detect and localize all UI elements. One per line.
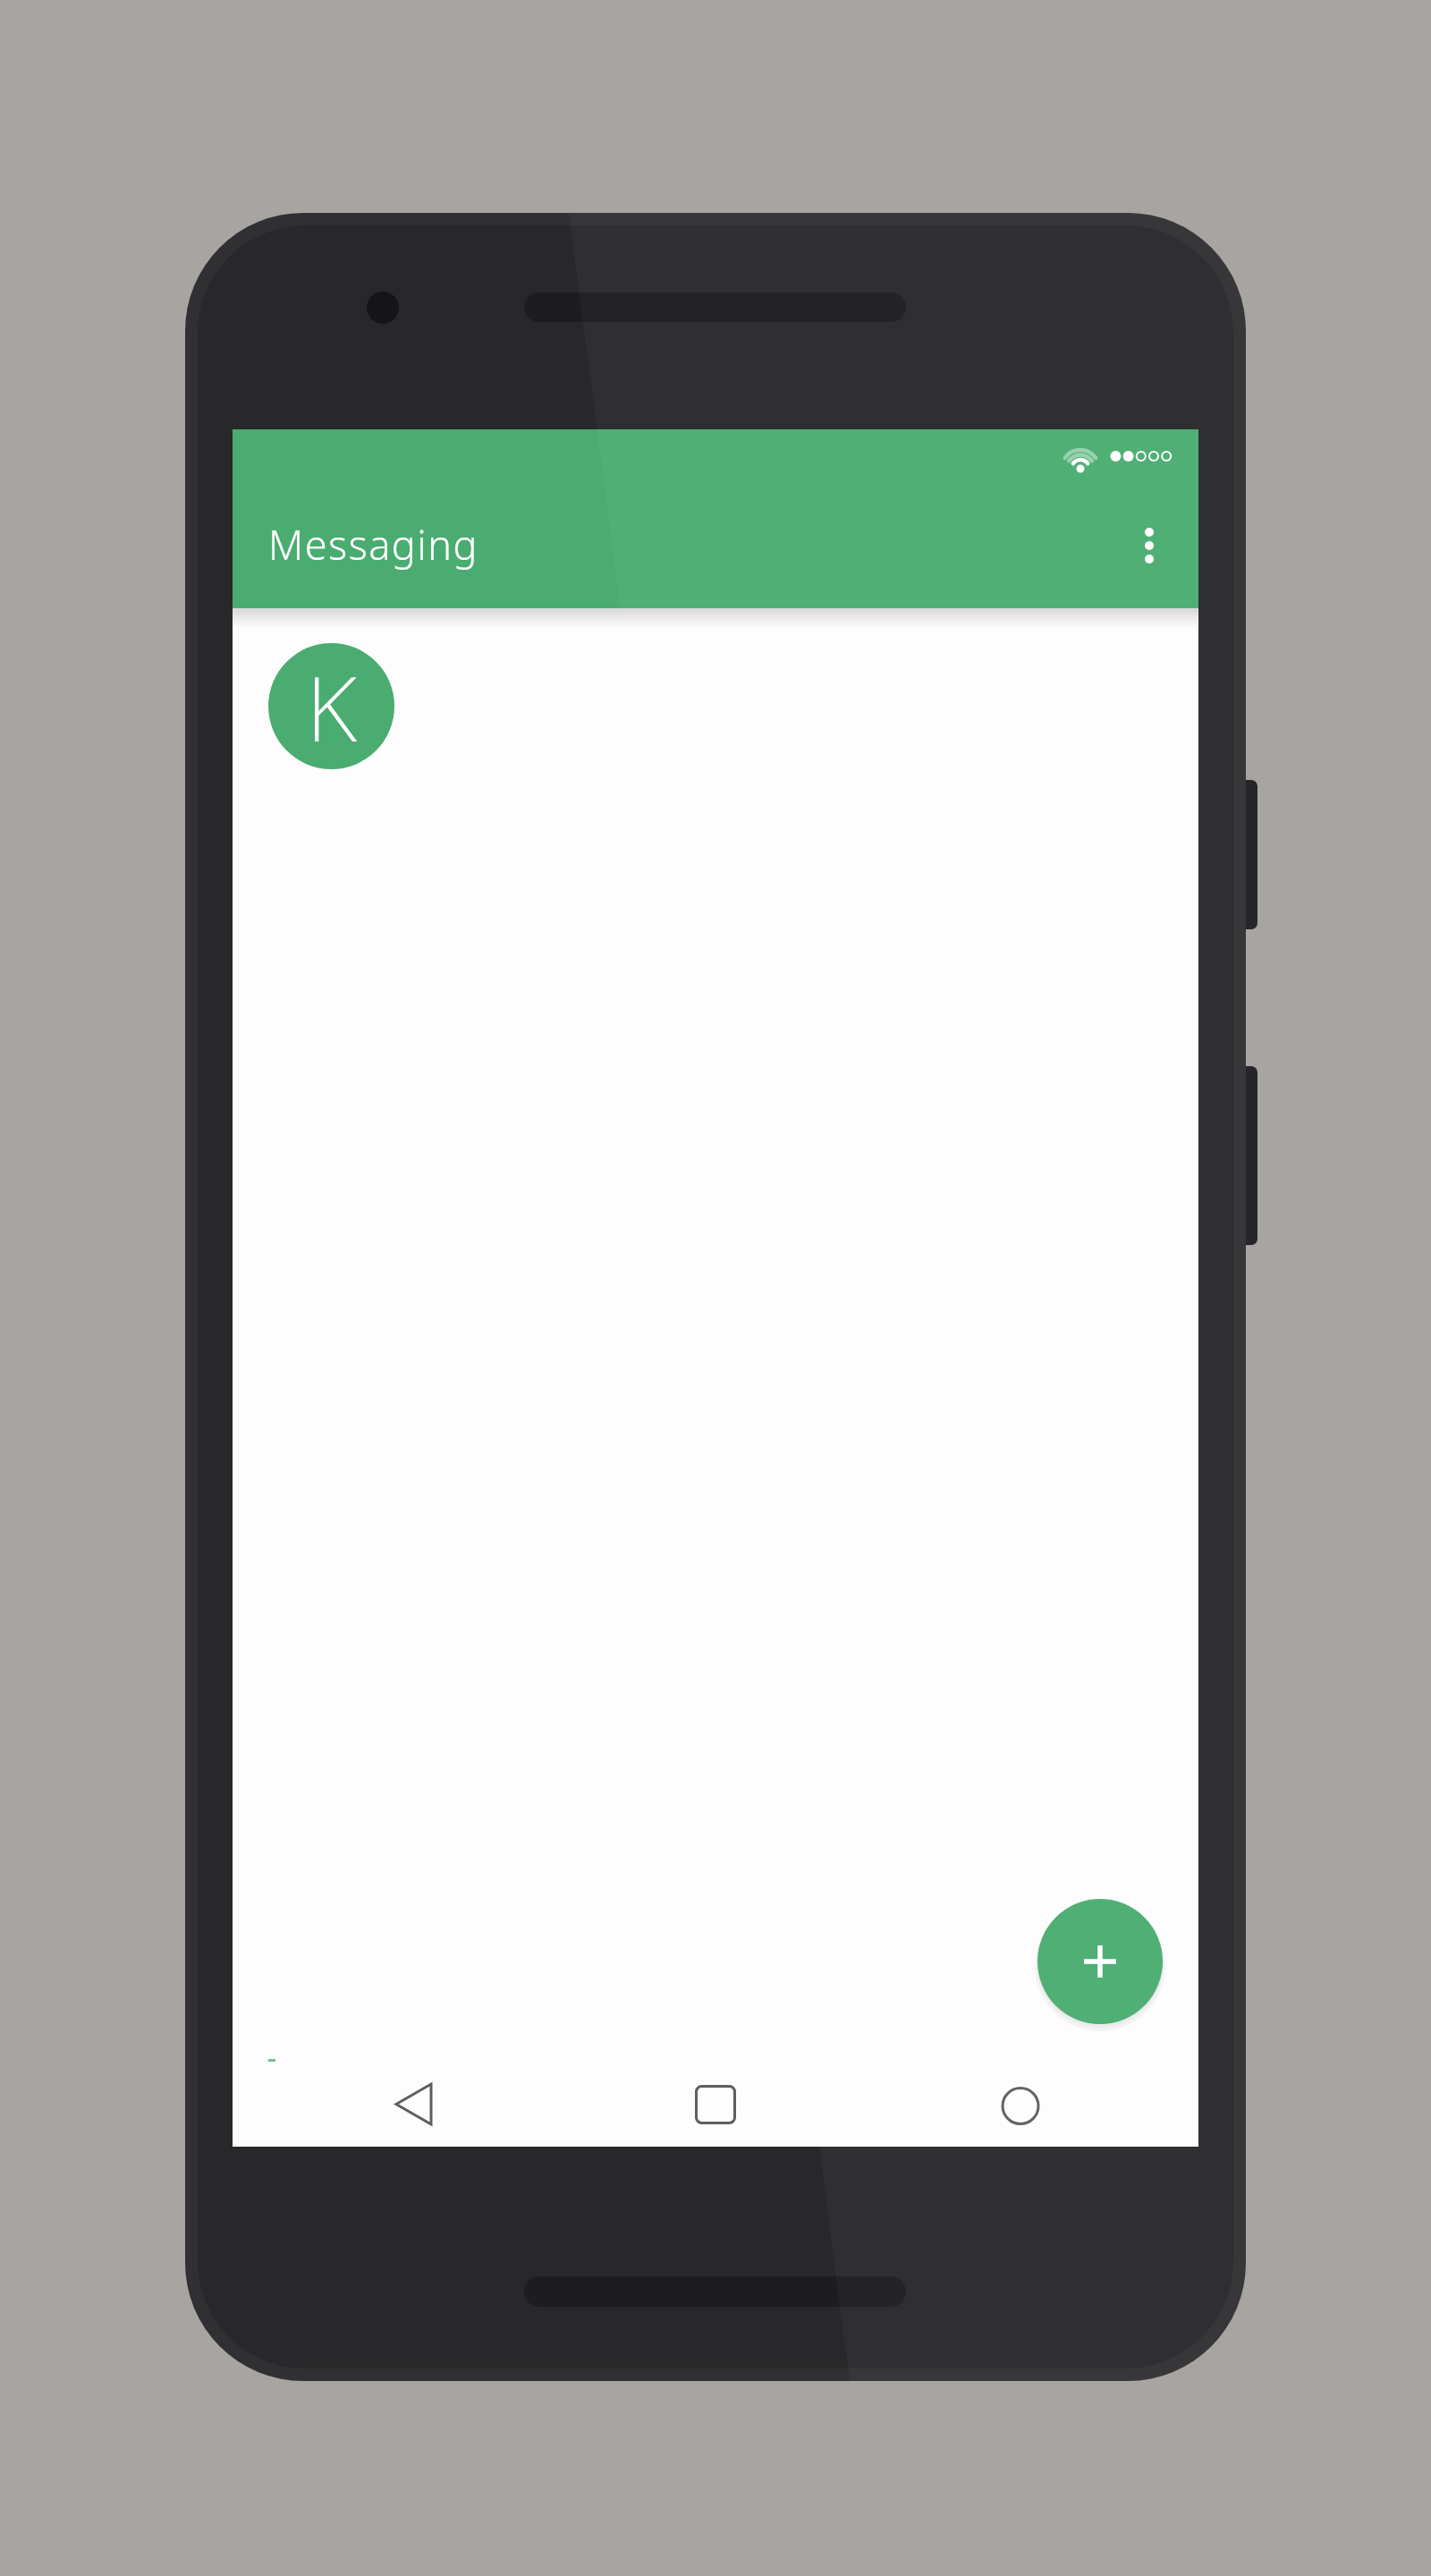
staticText: Messaging	[268, 517, 478, 572]
staticText: K	[306, 646, 357, 767]
button[interactable]	[1122, 505, 1176, 586]
button[interactable]	[369, 2077, 459, 2132]
button[interactable]	[669, 2077, 758, 2132]
button[interactable]	[1037, 1899, 1163, 2024]
button[interactable]	[994, 2077, 1083, 2132]
button[interactable]: K	[268, 643, 394, 769]
